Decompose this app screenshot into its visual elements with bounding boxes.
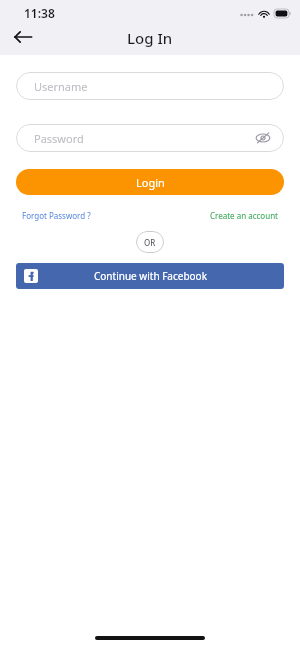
- button[interactable]: Password: [16, 124, 284, 152]
- button[interactable]: Forgot Password ?: [22, 210, 91, 221]
- button[interactable]: Back: [8, 22, 38, 52]
- staticText: Create an account: [210, 210, 278, 221]
- button[interactable]: Create an account: [210, 210, 278, 221]
- button[interactable]: Login: [16, 169, 284, 195]
- button[interactable]: Continue with Facebook: [16, 263, 284, 289]
- staticText: Login: [136, 175, 165, 190]
- button[interactable]: Username: [16, 72, 284, 100]
- staticText: 11:38: [24, 5, 55, 21]
- staticText: Username: [34, 79, 88, 94]
- staticText: Log In: [127, 28, 173, 48]
- staticText: Forgot Password ?: [22, 210, 91, 221]
- staticText: OR: [144, 237, 156, 248]
- button[interactable]: Show password: [252, 127, 274, 149]
- staticText: Password: [34, 131, 84, 146]
- staticText: Continue with Facebook: [94, 269, 207, 283]
